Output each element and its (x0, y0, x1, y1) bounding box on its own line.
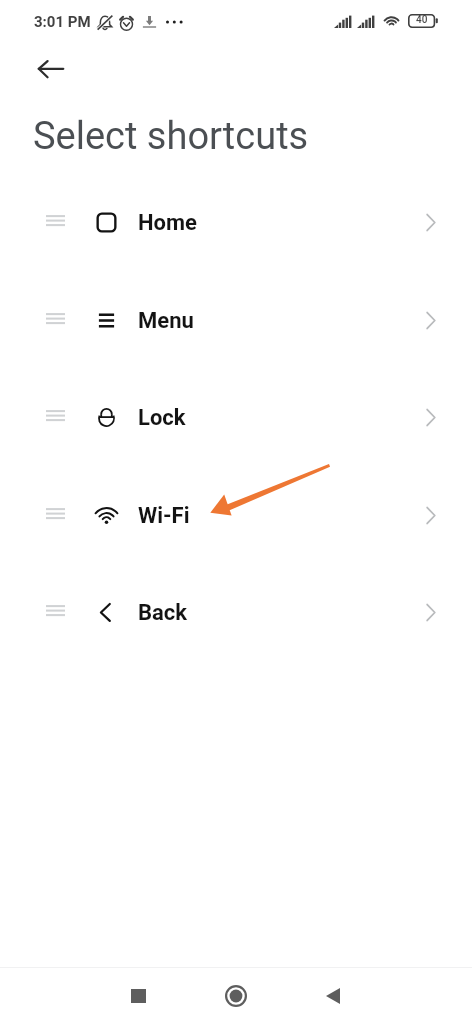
staticText: Wi-Fi (138, 503, 190, 529)
button[interactable]: Navigate up (27, 45, 75, 93)
staticText: Home (138, 210, 197, 236)
button[interactable]: Home (212, 972, 260, 1020)
staticText: 3:01 PM (34, 13, 91, 31)
staticText: 40 (416, 14, 428, 26)
staticText: Menu (138, 308, 194, 334)
button[interactable]: Wi-Fi (0, 467, 472, 563)
staticText: Select shortcuts (33, 114, 309, 159)
button[interactable]: Recent apps (114, 972, 162, 1020)
button[interactable]: Home (0, 174, 472, 270)
staticText: Lock (138, 405, 186, 431)
button[interactable]: Menu (0, 272, 472, 368)
button[interactable]: Back (309, 972, 357, 1020)
button[interactable]: Lock (0, 369, 472, 465)
staticText: Back (138, 600, 188, 626)
button[interactable]: Back (0, 564, 472, 660)
